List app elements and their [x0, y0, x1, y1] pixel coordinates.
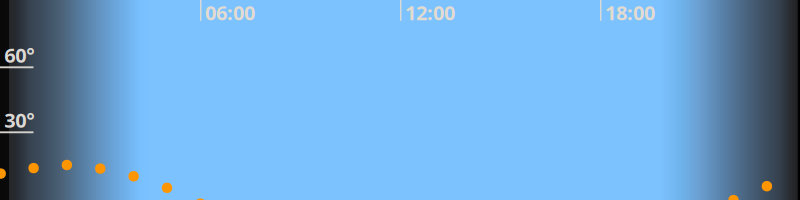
staticText: 30° [4, 107, 34, 133]
staticText: 12:00 [405, 0, 455, 26]
staticText: 06:00 [205, 0, 255, 26]
staticText: 18:00 [605, 0, 655, 26]
staticText: 60° [4, 42, 34, 68]
